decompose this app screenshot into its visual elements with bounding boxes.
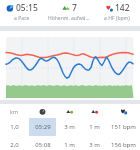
staticText: 142 <box>115 2 130 14</box>
button[interactable]: Elevation loss <box>82 104 106 118</box>
staticText: 05:08 <box>35 141 51 149</box>
button[interactable]: 2,0 <box>0 136 140 150</box>
staticText: 1,0 <box>10 123 19 131</box>
staticText: 2,0 <box>10 141 19 149</box>
button[interactable]: 1,0 <box>0 118 140 136</box>
button[interactable]: 142 <box>94 0 140 26</box>
staticText: 3 m <box>89 141 100 149</box>
staticText: 05:29 <box>35 123 51 131</box>
staticText: 05:15 <box>16 2 38 14</box>
button[interactable]: Pace <box>29 104 56 118</box>
staticText: 1 m <box>89 123 100 131</box>
staticText: 156 bpm <box>111 141 136 149</box>
staticText: 3 m <box>64 123 75 131</box>
staticText: ⌀ Pace <box>14 15 30 22</box>
button[interactable]: 7 <box>44 0 94 26</box>
staticText: 151 bpm <box>111 123 136 131</box>
button[interactable]: Elevation gain <box>56 104 82 118</box>
button[interactable]: Heart rate <box>106 104 140 118</box>
staticText: km <box>10 108 19 115</box>
staticText: Höhenm. aufwä... <box>48 15 90 22</box>
staticText: ⌀ HF (bpm) <box>104 15 130 22</box>
button[interactable]: 05:15 <box>0 0 44 26</box>
staticText: 1 m <box>64 141 75 149</box>
staticText: 7 <box>72 2 77 14</box>
